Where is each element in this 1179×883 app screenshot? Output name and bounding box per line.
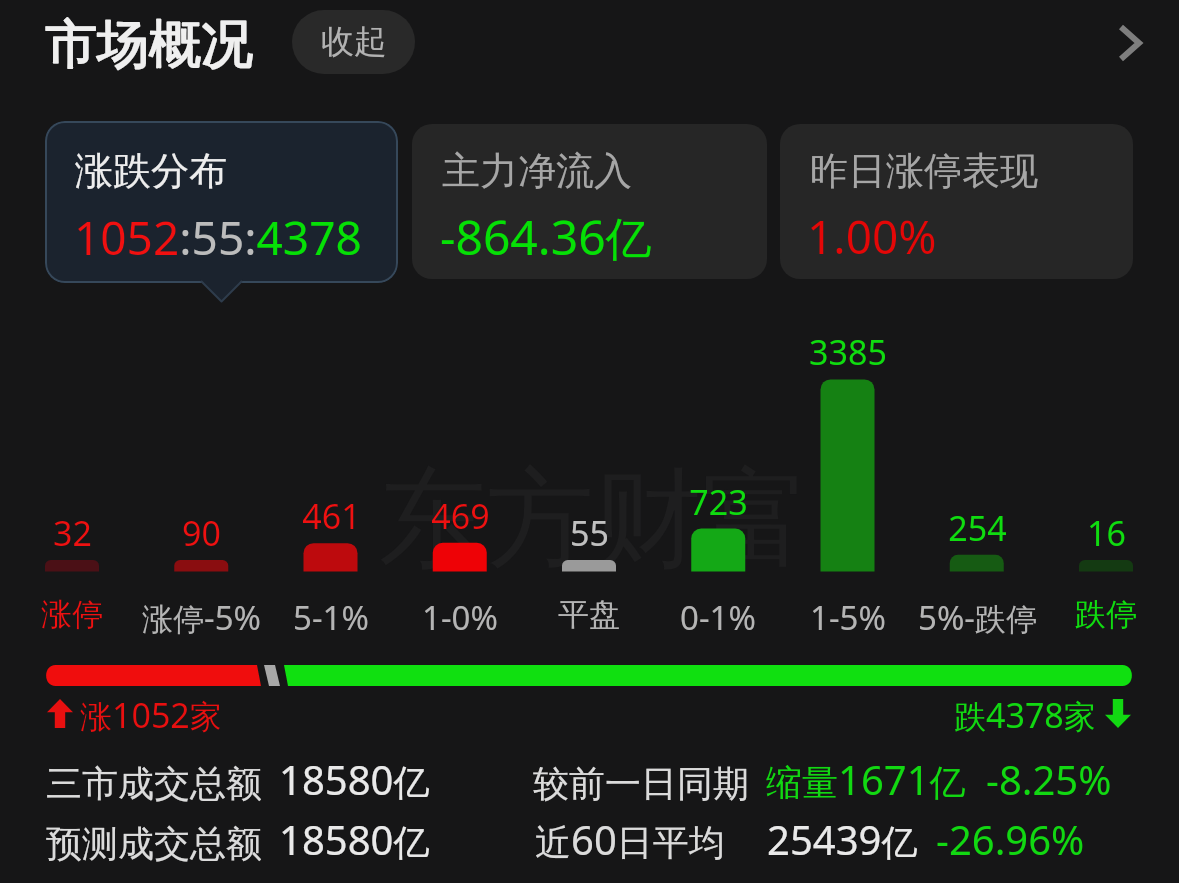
staticText: 昨日涨停表现 <box>810 147 1038 195</box>
staticText: 1.00% <box>807 205 937 268</box>
staticText: 收起 <box>321 21 387 63</box>
button[interactable]: 跌停 16 <box>1042 330 1170 630</box>
staticText: 市场概况 <box>45 12 253 78</box>
staticText: 较前一日同期 <box>533 761 749 806</box>
staticText: 平盘 <box>558 595 620 634</box>
staticText: 缩量1671亿 <box>766 752 966 806</box>
button[interactable]: 查看更多 <box>1095 8 1165 78</box>
staticText: 跌4378家 <box>954 692 1096 738</box>
staticText: 254 <box>948 505 1007 551</box>
staticText: 5-1% <box>293 595 369 640</box>
button[interactable]: 5-1% 461 <box>267 330 395 630</box>
staticText: 469 <box>431 493 490 539</box>
staticText: 5%-跌停 <box>918 595 1037 640</box>
button[interactable]: 0-1% 723 <box>654 330 782 630</box>
staticText: 预测成交总额 <box>46 821 262 866</box>
button[interactable]: 主力净流入 <box>412 124 767 279</box>
staticText: 18580亿 <box>279 752 430 806</box>
staticText: 0-1% <box>680 595 756 640</box>
button[interactable]: 涨停-5% 90 <box>137 330 265 630</box>
staticText: 32 <box>53 510 92 556</box>
staticText: 涨1052家 <box>80 692 222 738</box>
staticText: -864.36亿 <box>440 204 652 269</box>
button[interactable]: 5%-跌停 254 <box>913 330 1041 630</box>
staticText: 1052:55:4378 <box>74 206 362 269</box>
staticText: 东方财富 <box>378 452 810 588</box>
staticText: 90 <box>182 510 221 556</box>
button[interactable]: 涨停 32 <box>8 330 136 630</box>
staticText: 3385 <box>809 329 887 375</box>
button[interactable]: 昨日涨停表现 <box>780 124 1133 279</box>
staticText: 涨停-5% <box>142 595 261 640</box>
staticText: 三市成交总额 <box>46 761 262 806</box>
button[interactable]: 1-0% 469 <box>396 330 524 630</box>
staticText: 461 <box>302 493 361 539</box>
staticText: 主力净流入 <box>442 147 632 195</box>
staticText: -26.96% <box>936 812 1085 866</box>
staticText: 723 <box>689 479 748 525</box>
staticText: 55 <box>570 510 609 556</box>
button[interactable]: 涨跌分布 <box>45 121 398 283</box>
button[interactable]: 1-5% 3385 <box>784 330 912 630</box>
staticText: 跌停 <box>1075 595 1137 634</box>
staticText: 1-0% <box>422 595 498 640</box>
staticText: 近60日平均 <box>535 812 725 866</box>
staticText: 25439亿 <box>767 812 918 866</box>
button[interactable]: 收起 <box>292 10 415 74</box>
staticText: 涨跌分布 <box>75 147 227 195</box>
staticText: 18580亿 <box>279 812 430 866</box>
staticText: -8.25% <box>986 752 1112 806</box>
staticText: 16 <box>1087 510 1126 556</box>
button[interactable]: 平盘 55 <box>525 330 653 630</box>
staticText: 市场概况 <box>45 12 253 78</box>
staticText: 1-5% <box>810 595 886 640</box>
staticText: 涨停 <box>41 595 103 634</box>
